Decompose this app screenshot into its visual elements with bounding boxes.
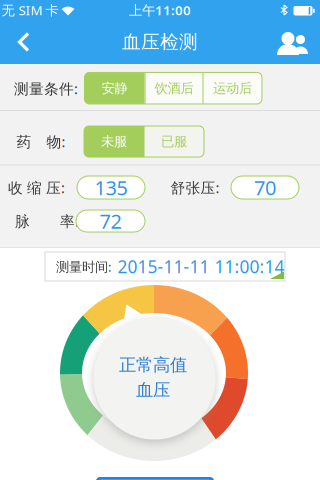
staticText: 运动后: [213, 80, 252, 96]
staticText: 测量条件:: [14, 79, 78, 98]
button[interactable]: 未服: [84, 126, 144, 157]
staticText: 2015-11-11 11:00:14: [117, 255, 284, 278]
staticText: 收 缩 压:: [8, 178, 65, 197]
button[interactable]: 已服: [145, 126, 203, 157]
button[interactable]: 用户: [275, 26, 311, 60]
staticText: 饮酒后: [154, 80, 193, 96]
staticText: 70: [254, 174, 276, 201]
staticText: 上午11:00: [129, 1, 191, 19]
button[interactable]: 运动后: [203, 72, 261, 104]
staticText: 安静: [101, 80, 127, 96]
staticText: 药 物:: [16, 132, 65, 151]
staticText: 血压: [136, 379, 170, 401]
staticText: 血压检测: [122, 30, 198, 53]
button[interactable]: 测量时间:: [45, 252, 285, 281]
staticText: 舒张压:: [170, 178, 219, 197]
staticText: 未服: [101, 133, 127, 150]
staticText: 135: [94, 174, 127, 201]
button[interactable]: 70: [231, 176, 299, 199]
staticText: 正常高值: [119, 354, 187, 376]
staticText: 已服: [161, 133, 187, 150]
staticText: 脉 率:: [15, 211, 79, 231]
staticText: 无 SIM 卡: [1, 1, 58, 19]
button[interactable]: 饮酒后: [145, 72, 203, 104]
staticText: 测量时间:: [56, 258, 112, 275]
button[interactable]: 72: [76, 210, 145, 232]
button[interactable]: 返回: [9, 25, 39, 59]
button[interactable]: 安静: [84, 72, 144, 104]
button[interactable]: 保存: [96, 477, 214, 480]
staticText: 72: [99, 208, 121, 234]
button[interactable]: 135: [77, 176, 145, 199]
